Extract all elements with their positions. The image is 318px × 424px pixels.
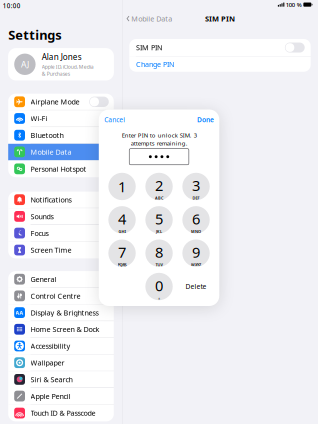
staticText: + xyxy=(158,295,160,301)
staticText: Home Screen & Dock xyxy=(30,324,99,334)
button[interactable]: Wallpaper xyxy=(8,355,114,371)
staticText: 6 xyxy=(192,209,200,229)
staticText: 2 xyxy=(155,175,163,195)
staticText: Sounds xyxy=(30,211,53,221)
staticText: DEF xyxy=(192,195,199,201)
staticText: 8 xyxy=(155,242,163,262)
button[interactable]: 3 xyxy=(182,173,210,200)
staticText: Apple Pencil xyxy=(30,391,70,401)
button[interactable]: General xyxy=(8,271,114,288)
staticText: Airplane Mode xyxy=(30,97,79,107)
staticText: 5 xyxy=(155,209,163,229)
staticText: MNO xyxy=(191,229,201,234)
staticText: Mobile Data xyxy=(131,14,172,23)
staticText: General xyxy=(30,274,56,284)
staticText: Notifications xyxy=(30,195,71,205)
button[interactable]: Screen Time xyxy=(8,242,114,258)
staticText: Done xyxy=(197,115,214,124)
staticText: SIM PIN xyxy=(205,13,235,24)
button[interactable]: Focus xyxy=(8,225,114,242)
button[interactable]: Wi-Fi xyxy=(8,110,114,127)
button[interactable]: 6 xyxy=(182,206,210,233)
staticText: AA xyxy=(16,309,24,316)
staticText: Control Centre xyxy=(30,291,80,301)
button[interactable]: 8 xyxy=(145,239,173,267)
staticText: 4 xyxy=(118,209,126,229)
button[interactable]: AA xyxy=(8,304,114,321)
staticText: 1 xyxy=(118,176,126,196)
staticText: Mobile Data xyxy=(30,147,71,157)
button[interactable]: Change PIN xyxy=(129,56,311,72)
button[interactable]: Cancel xyxy=(104,114,125,126)
button[interactable]: Bluetooth xyxy=(8,127,114,144)
staticText: Screen Time xyxy=(30,245,71,255)
button[interactable]: 9 xyxy=(182,239,210,267)
staticText: 10:00 xyxy=(3,2,21,10)
staticText: Delete xyxy=(185,282,206,291)
staticText: Bluetooth xyxy=(30,130,63,140)
staticText: 100 % xyxy=(286,1,302,9)
button[interactable]: Mobile Data xyxy=(8,144,114,160)
staticText: Personal Hotspot xyxy=(30,164,86,174)
staticText: ABC xyxy=(155,195,163,201)
button[interactable]: Accessibility xyxy=(8,338,114,355)
staticText: 3 xyxy=(192,175,200,195)
button[interactable]: Airplane Mode xyxy=(8,94,114,110)
button[interactable]: Personal Hotspot xyxy=(8,160,114,177)
button[interactable]: Siri & Search xyxy=(8,371,114,388)
staticText: Display & Brightness xyxy=(30,308,98,317)
button[interactable]: Delete xyxy=(182,273,210,300)
button[interactable]: Sounds xyxy=(8,208,114,225)
button[interactable]: Notifications xyxy=(8,192,114,208)
button[interactable]: Mobile Data xyxy=(126,11,172,26)
staticText: TUV xyxy=(155,262,162,267)
button[interactable]: Control Centre xyxy=(8,288,114,304)
button[interactable]: 4 xyxy=(108,206,136,233)
staticText: Focus xyxy=(30,228,48,238)
staticText: Accessibility xyxy=(30,341,70,351)
staticText: WXYZ xyxy=(191,262,201,267)
staticText: GHI xyxy=(118,229,125,234)
button[interactable]: Apple Pencil xyxy=(8,388,114,405)
button[interactable]: 1 xyxy=(108,173,136,200)
button[interactable]: AJ xyxy=(8,48,114,80)
staticText: SIM PIN xyxy=(136,43,162,52)
button[interactable]: 0 xyxy=(145,273,173,300)
staticText: Wi-Fi xyxy=(30,114,47,123)
button[interactable]: Touch ID & Passcode xyxy=(8,405,114,421)
button[interactable]: Done xyxy=(197,114,214,126)
button[interactable]: SIM PIN xyxy=(129,39,311,57)
button[interactable]: 7 xyxy=(108,239,136,267)
staticText: Settings xyxy=(8,26,61,44)
staticText: 7 xyxy=(118,242,126,262)
staticText: 0 xyxy=(155,275,163,295)
staticText: Change PIN xyxy=(136,59,174,69)
staticText: Apple ID, iCloud, Media & Purchases xyxy=(42,63,94,77)
button[interactable]: 5 xyxy=(145,206,173,233)
staticText: Wallpaper xyxy=(30,358,64,368)
button[interactable]: 2 xyxy=(145,173,173,200)
staticText: AJ xyxy=(21,58,29,70)
staticText: Touch ID & Passcode xyxy=(30,408,95,418)
staticText: Siri & Search xyxy=(30,374,72,384)
staticText: 9 xyxy=(192,242,200,262)
staticText: Cancel xyxy=(104,115,125,124)
staticText: JKL xyxy=(156,229,162,234)
staticText: PQRS xyxy=(117,262,126,267)
staticText: Enter PIN to unlock SIM. 3 attempts rema… xyxy=(121,131,196,147)
staticText: Alan Jones xyxy=(42,51,82,62)
button[interactable]: Home Screen & Dock xyxy=(8,321,114,338)
